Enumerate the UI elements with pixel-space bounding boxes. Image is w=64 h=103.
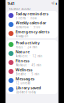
staticText: Ambient · 12 min	[15, 54, 42, 58]
button[interactable]: Productivity	[6, 40, 57, 49]
staticText: Tomorrow · 9:00	[15, 25, 40, 29]
button[interactable]: Library saved	[6, 85, 57, 94]
staticText: Breathe · 5 min	[15, 72, 39, 76]
staticText: Workout · 45 min	[15, 63, 41, 67]
staticText: Today reminders	[15, 11, 48, 16]
staticText: Focus · 24 min	[15, 45, 37, 49]
staticText: 12 unread	[15, 81, 30, 85]
staticText: Productivity	[15, 40, 39, 45]
button[interactable]: Fitness	[6, 58, 57, 67]
staticText: Library saved	[15, 85, 41, 90]
staticText: Emergency alerts	[15, 29, 49, 34]
staticText: Fitness	[15, 58, 29, 63]
button[interactable]: Emergency alerts	[6, 29, 57, 38]
button[interactable]: Nature	[6, 49, 57, 58]
staticText: Nature	[15, 49, 29, 54]
button[interactable]: Weekly calendar	[6, 20, 57, 29]
staticText: 9:41	[7, 1, 14, 6]
button[interactable]: Messages	[6, 76, 57, 85]
button[interactable]: Today reminders	[6, 11, 57, 20]
button[interactable]: Wellness	[6, 67, 57, 76]
staticText: •ıl ▮	[51, 2, 56, 5]
staticText: Always on	[15, 34, 28, 38]
staticText: Wellness	[15, 67, 32, 72]
staticText: Weekly calendar	[15, 20, 46, 25]
staticText: 3 items · now	[15, 16, 36, 20]
staticText: RECENTLY ADDED	[8, 7, 30, 11]
staticText: Updated today	[15, 90, 35, 94]
staticText: Messages	[15, 76, 34, 81]
